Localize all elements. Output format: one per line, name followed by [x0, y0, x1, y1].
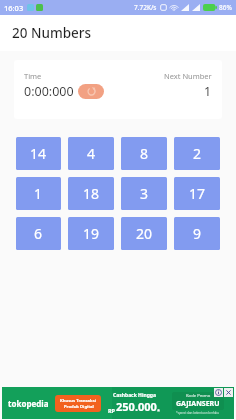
staticText: 2: [193, 144, 202, 163]
staticText: Produk Digital: [64, 404, 94, 410]
staticText: 8: [140, 144, 149, 163]
button[interactable]: 3: [121, 177, 167, 210]
button[interactable]: 20: [121, 217, 167, 250]
staticText: 16:03: [4, 3, 24, 13]
staticText: GAJIANSERU: [176, 399, 220, 409]
button[interactable]: Ad info: [214, 388, 223, 397]
button[interactable]: 14: [16, 137, 61, 170]
staticText: 0:00:000: [24, 83, 74, 100]
staticText: *: [157, 407, 160, 414]
staticText: 1: [34, 184, 43, 203]
button[interactable]: 19: [68, 217, 114, 250]
button[interactable]: 2: [174, 137, 220, 170]
staticText: RP: [108, 407, 116, 414]
staticText: 3: [140, 184, 149, 203]
button[interactable]: 9: [174, 217, 220, 250]
staticText: 7.72K/s: [134, 3, 157, 12]
staticText: 20 Numbers: [12, 24, 92, 42]
staticText: Kode Promo: [186, 393, 211, 399]
staticText: 86%: [219, 3, 232, 12]
button[interactable]: 18: [68, 177, 114, 210]
staticText: Cashback Hingga: [113, 392, 156, 399]
button[interactable]: 8: [121, 137, 167, 170]
staticText: 14: [30, 144, 47, 163]
staticText: 4: [87, 144, 96, 163]
staticText: 1: [204, 83, 212, 100]
button[interactable]: 17: [174, 177, 220, 210]
staticText: 19: [83, 224, 100, 243]
staticText: 9: [193, 224, 202, 243]
staticText: 17: [189, 184, 206, 203]
staticText: 250.000: [116, 399, 157, 414]
button[interactable]: Reset timer: [78, 84, 104, 99]
button[interactable]: tokopedia: [2, 387, 234, 419]
staticText: 20: [136, 224, 153, 243]
button[interactable]: 4: [68, 137, 114, 170]
staticText: Next Number: [164, 71, 212, 81]
staticText: 18: [83, 184, 100, 203]
staticText: *syarat dan ketentuan berlaku: [176, 411, 220, 415]
staticText: Time: [24, 71, 42, 81]
button[interactable]: 6: [16, 217, 61, 250]
staticText: tokopedia: [8, 398, 49, 409]
button[interactable]: Close ad: [224, 388, 233, 397]
staticText: Khusus Transaksi: [60, 398, 97, 404]
button[interactable]: 1: [16, 177, 61, 210]
staticText: 6: [34, 224, 43, 243]
